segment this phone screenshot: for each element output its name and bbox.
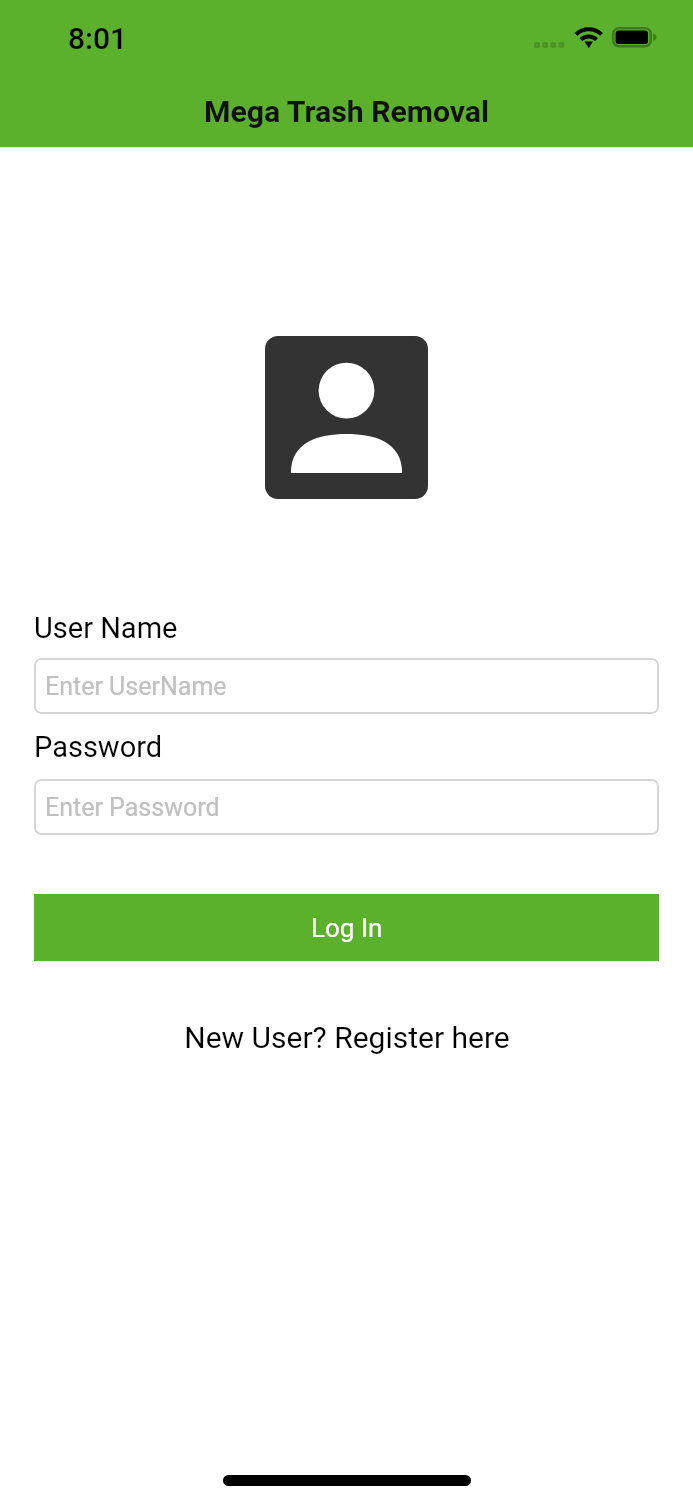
- staticText: Enter UserName: [45, 672, 227, 701]
- staticText: Mega Trash Removal: [0, 94, 693, 129]
- staticText: New User? Register here: [184, 1020, 510, 1055]
- other: Account avatar: [265, 336, 428, 499]
- button[interactable]: Enter Password: [34, 779, 659, 835]
- staticText: Log In: [311, 913, 383, 943]
- button[interactable]: New User? Register here: [34, 1020, 659, 1055]
- staticText: 8:01: [68, 21, 128, 56]
- staticText: User Name: [34, 611, 178, 645]
- button[interactable]: Enter UserName: [34, 658, 659, 714]
- staticText: Password: [34, 730, 163, 764]
- button[interactable]: Log In: [34, 894, 659, 961]
- staticText: Enter Password: [45, 793, 220, 822]
